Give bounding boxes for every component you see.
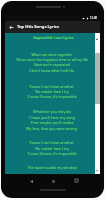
staticText: 12:00 [90,16,98,20]
staticText: No matter how I try [35,146,69,151]
staticText: 'Cause I know, it's impossible [27,94,77,99]
staticText: 'Cause I know, it's impossible [27,151,77,156]
staticText: Top Hits Songs Lyrics [17,24,59,30]
staticText: Now we're separated [34,62,70,67]
staticText: 'Cause I can't love another [29,84,74,89]
staticText: Whatever you may do [33,109,71,114]
staticText: My love, that you were wrong [26,126,77,131]
button[interactable]: Back [22,172,40,190]
staticText: I hope you'll hear my song [29,115,75,120]
staticText: 'Cause I can't love another [29,140,74,145]
button[interactable]: Recent apps [67,171,85,189]
staticText: I don't know what I will do [29,68,74,73]
staticText: Then maybe you'll realize [30,120,74,125]
staticText: The sweet subtle my window [27,165,77,170]
staticText: Impossible Love Lyrics [33,35,74,40]
staticText: When we were together [31,52,73,57]
button[interactable]: Home [44,172,62,190]
staticText: No matter how I try [35,89,69,94]
staticText: Those were the happiest time in all my l… [16,57,88,62]
button[interactable]: Back [5,21,17,33]
